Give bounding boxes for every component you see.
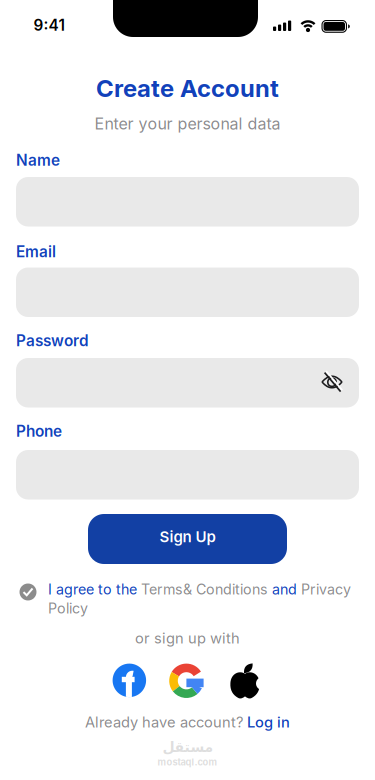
staticText: mostaql.com — [157, 756, 217, 768]
staticText: Email — [16, 242, 56, 261]
staticText: or sign up with — [135, 629, 240, 647]
button[interactable] — [169, 664, 204, 698]
staticText: Enter your personal data — [94, 114, 280, 133]
staticText: Privacy — [301, 581, 351, 598]
staticText: Policy — [48, 600, 88, 617]
staticText: Password — [16, 331, 89, 350]
staticText: 9:41 — [33, 16, 64, 34]
button[interactable] — [321, 371, 343, 393]
staticText: Log in — [247, 713, 290, 731]
staticText: Terms& Conditions — [141, 581, 268, 598]
staticText: مستقل — [162, 739, 213, 755]
button[interactable] — [19, 583, 36, 600]
button[interactable] — [113, 664, 146, 697]
button[interactable]: I agree to the — [48, 581, 351, 617]
button[interactable] — [16, 358, 359, 407]
staticText: Name — [16, 151, 60, 170]
staticText: Phone — [16, 422, 62, 440]
button[interactable] — [230, 663, 260, 699]
staticText: Already have account? — [85, 713, 243, 731]
staticText: I agree to the — [48, 581, 141, 598]
staticText: and — [268, 581, 301, 598]
staticText: Sign Up — [159, 528, 215, 546]
staticText: Create Account — [96, 74, 279, 103]
button[interactable]: Sign Up — [88, 514, 287, 564]
button[interactable]: Log in — [247, 713, 290, 731]
